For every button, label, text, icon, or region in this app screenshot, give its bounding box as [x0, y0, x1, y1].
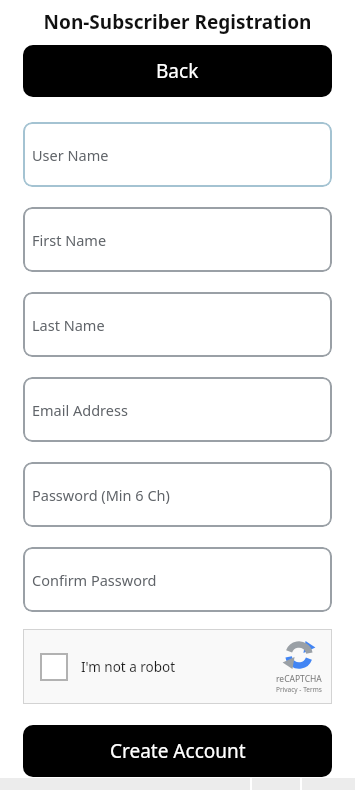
button[interactable]: I'm not a robot checkbox — [40, 653, 68, 681]
staticText: Privacy - Terms — [276, 685, 322, 694]
staticText: First Name — [32, 230, 107, 250]
button[interactable]: Confirm Password — [23, 547, 332, 612]
button[interactable]: Email Address — [23, 377, 332, 442]
button[interactable]: Password (Min 6 Ch) — [23, 462, 332, 527]
staticText: I'm not a robot — [81, 658, 176, 676]
button[interactable]: User Name — [23, 122, 332, 187]
button[interactable]: Last Name — [23, 292, 332, 357]
staticText: Password (Min 6 Ch) — [32, 485, 170, 505]
staticText: Create Account — [110, 738, 246, 764]
staticText: Non-Subscriber Registration — [0, 9, 355, 35]
staticText: User Name — [32, 145, 109, 165]
staticText: Back — [156, 58, 199, 84]
staticText: Email Address — [32, 400, 128, 420]
staticText: Last Name — [32, 315, 105, 335]
staticText: Confirm Password — [32, 570, 157, 590]
button[interactable]: Back — [23, 45, 332, 97]
staticText: reCAPTCHA — [276, 673, 322, 685]
button[interactable]: First Name — [23, 207, 332, 272]
button[interactable]: Create Account — [23, 725, 332, 777]
button[interactable]: I'm not a robot checkbox — [23, 629, 332, 704]
